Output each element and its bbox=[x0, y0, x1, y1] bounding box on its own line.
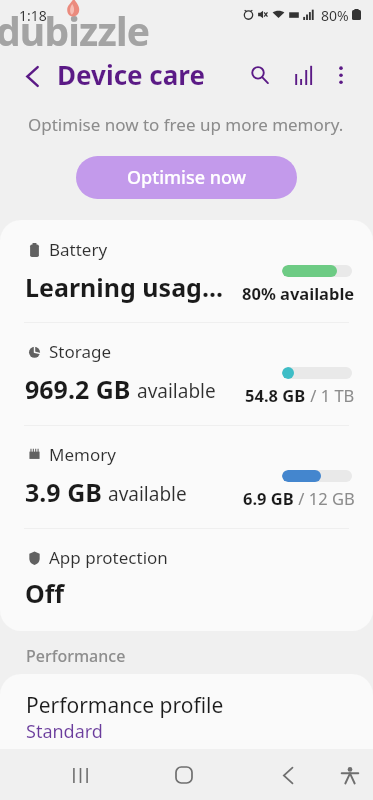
button[interactable]: Home bbox=[160, 754, 208, 796]
staticText: available bbox=[108, 481, 187, 507]
staticText: Optimise now bbox=[127, 165, 247, 190]
staticText: dubizzle bbox=[0, 4, 150, 57]
staticText: Performance profile bbox=[26, 691, 224, 720]
staticText: 1:18 bbox=[19, 6, 47, 25]
button[interactable]: More options bbox=[324, 58, 358, 92]
button[interactable]: Search bbox=[243, 58, 277, 92]
staticText: / 12 GB bbox=[294, 487, 355, 509]
button[interactable]: Memory bbox=[0, 425, 373, 527]
staticText: App protection bbox=[49, 546, 168, 569]
staticText: 80% available bbox=[242, 282, 355, 304]
button[interactable]: Navigate up bbox=[14, 59, 50, 93]
staticText: 969.2 GB bbox=[25, 372, 131, 406]
button[interactable]: Performance profile bbox=[0, 674, 373, 749]
staticText: 6.9 GB bbox=[243, 487, 294, 509]
button[interactable]: Optimise now bbox=[76, 156, 297, 199]
button[interactable]: Accessibility bbox=[330, 754, 370, 796]
staticText: Standard bbox=[26, 719, 103, 744]
button[interactable]: Recent apps bbox=[56, 754, 104, 796]
staticText: Storage bbox=[49, 340, 112, 363]
staticText: Performance bbox=[26, 645, 126, 667]
button[interactable]: Storage bbox=[0, 322, 373, 424]
staticText: available bbox=[137, 378, 216, 404]
staticText: 3.9 GB bbox=[25, 475, 102, 509]
button[interactable]: App protection bbox=[0, 528, 373, 631]
button[interactable]: Battery bbox=[0, 220, 373, 322]
staticText: 80% bbox=[321, 6, 349, 25]
button[interactable]: Usage statistics bbox=[286, 58, 320, 92]
staticText: / 1 TB bbox=[306, 384, 355, 406]
staticText: Battery bbox=[49, 238, 108, 261]
button[interactable]: Back bbox=[264, 754, 312, 796]
staticText: Optimise now to free up more memory. bbox=[28, 113, 344, 136]
staticText: Off bbox=[25, 576, 65, 610]
staticText: Device care bbox=[57, 57, 205, 92]
staticText: Memory bbox=[49, 443, 116, 466]
staticText: 54.8 GB bbox=[245, 384, 306, 406]
staticText: Learning usag... bbox=[25, 270, 223, 304]
